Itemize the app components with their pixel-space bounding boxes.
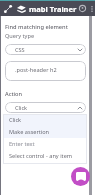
button[interactable]: More options: [88, 4, 95, 13]
staticText: Click: [9, 116, 22, 124]
staticText: mabl Trainer: [29, 4, 77, 14]
button[interactable]: Click: [5, 102, 86, 113]
staticText: Find matching element: [5, 23, 68, 31]
staticText: Query type: [5, 32, 35, 40]
button[interactable]: Enter text: [3, 138, 87, 150]
staticText: .post-header h2: [15, 66, 57, 74]
staticText: Enter text: [9, 140, 35, 148]
staticText: CSS: [15, 46, 25, 54]
button[interactable]: Resize panel: [2, 3, 14, 15]
button[interactable]: .post-header h2: [5, 61, 86, 81]
staticText: Select control - any item: [9, 152, 73, 160]
staticText: Click: [15, 104, 28, 112]
staticText: Action: [5, 90, 22, 98]
button[interactable]: Help: [77, 3, 88, 14]
button[interactable]: Open chat: [71, 167, 90, 186]
button[interactable]: CSS: [5, 44, 86, 55]
staticText: Make assertion: [9, 128, 50, 136]
button[interactable]: Click: [3, 114, 87, 126]
button[interactable]: Select control - any item: [3, 150, 87, 162]
button[interactable]: Make assertion: [3, 126, 87, 138]
